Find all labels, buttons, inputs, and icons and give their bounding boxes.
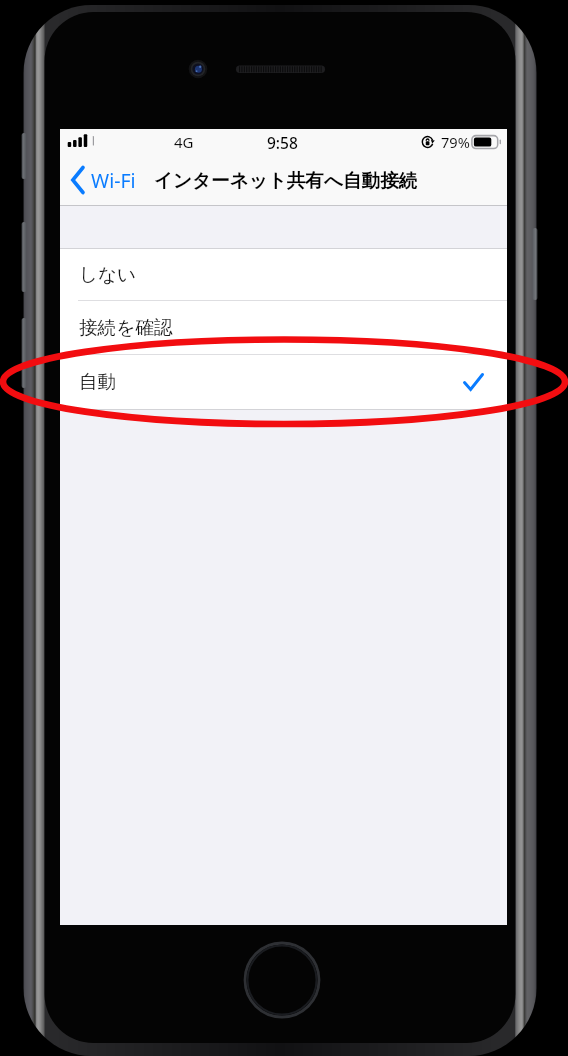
other: Battery 79 percent xyxy=(471,135,501,149)
staticText: 4G xyxy=(174,132,194,152)
button[interactable]: Back to Wi-Fi xyxy=(69,165,136,195)
button[interactable]: しない xyxy=(60,249,507,301)
button[interactable]: 自動 xyxy=(60,355,507,409)
staticText: Wi-Fi xyxy=(91,167,136,194)
staticText: 9:58 xyxy=(267,132,298,153)
staticText: 接続を確認 xyxy=(79,316,173,339)
staticText: しない xyxy=(79,263,137,286)
button[interactable]: 接続を確認 xyxy=(60,301,507,355)
staticText: インターネット共有へ自動接続 xyxy=(154,169,418,192)
other: Rotation lock xyxy=(422,129,437,155)
staticText: 自動 xyxy=(79,370,117,393)
other: Back to Wi-Fi xyxy=(69,165,88,195)
staticText: 79% xyxy=(441,132,470,152)
